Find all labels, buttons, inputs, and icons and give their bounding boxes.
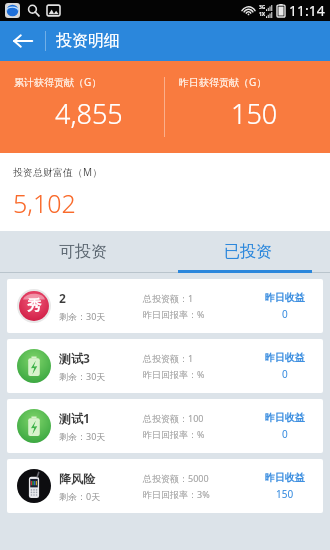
staticText: 总投资额：100 (143, 412, 204, 424)
staticText: 测试1 (59, 410, 90, 426)
button[interactable]: 降风险 (7, 459, 323, 513)
staticText: 昨日获得贡献（G） (179, 75, 267, 89)
staticText: 0 (282, 427, 288, 441)
staticText: 总投资额：1 (143, 292, 194, 304)
staticText: 剩余：30天 (59, 430, 106, 442)
staticText: 累计获得贡献（G） (14, 75, 102, 89)
button[interactable]: 秀 (7, 279, 323, 333)
staticText: 剩余：0天 (59, 490, 101, 502)
staticText: 投资明细 (56, 31, 120, 51)
staticText: 已投资 (224, 242, 272, 262)
staticText: 4,855 (55, 95, 123, 132)
button[interactable]: Back (0, 21, 46, 61)
button[interactable]: 已投资 (165, 231, 330, 273)
staticText: 昨日收益 (265, 471, 305, 484)
staticText: 5,102 (13, 186, 76, 220)
staticText: 昨日收益 (265, 351, 305, 364)
staticText: 昨日收益 (265, 291, 305, 304)
staticText: 昨日回报率：% (143, 368, 205, 380)
staticText: 总投资额：5000 (143, 472, 209, 484)
staticText: 3G (259, 4, 266, 11)
button[interactable]: 可投资 (0, 231, 165, 273)
staticText: 降风险 (59, 471, 95, 486)
staticText: 测试3 (59, 350, 90, 366)
staticText: 0 (282, 307, 288, 321)
button[interactable]: 测试1 (7, 399, 323, 453)
staticText: 2 (59, 290, 66, 306)
staticText: 昨日回报率：% (143, 308, 205, 320)
staticText: 昨日回报率：3% (143, 488, 210, 500)
staticText: 剩余：30天 (59, 370, 106, 382)
staticText: 0 (282, 367, 288, 381)
staticText: 剩余：30天 (59, 310, 106, 322)
staticText: 150 (276, 487, 294, 501)
staticText: 总投资额：1 (143, 352, 194, 364)
staticText: 150 (231, 95, 278, 132)
staticText: 昨日收益 (265, 411, 305, 424)
staticText: 可投资 (59, 242, 107, 262)
staticText: 昨日回报率：% (143, 428, 205, 440)
staticText: 秀 (27, 297, 41, 315)
staticText: 投资总财富值（M） (13, 165, 103, 179)
staticText: 11:14 (289, 1, 325, 20)
button[interactable]: 测试3 (7, 339, 323, 393)
staticText: 1X (259, 11, 266, 18)
